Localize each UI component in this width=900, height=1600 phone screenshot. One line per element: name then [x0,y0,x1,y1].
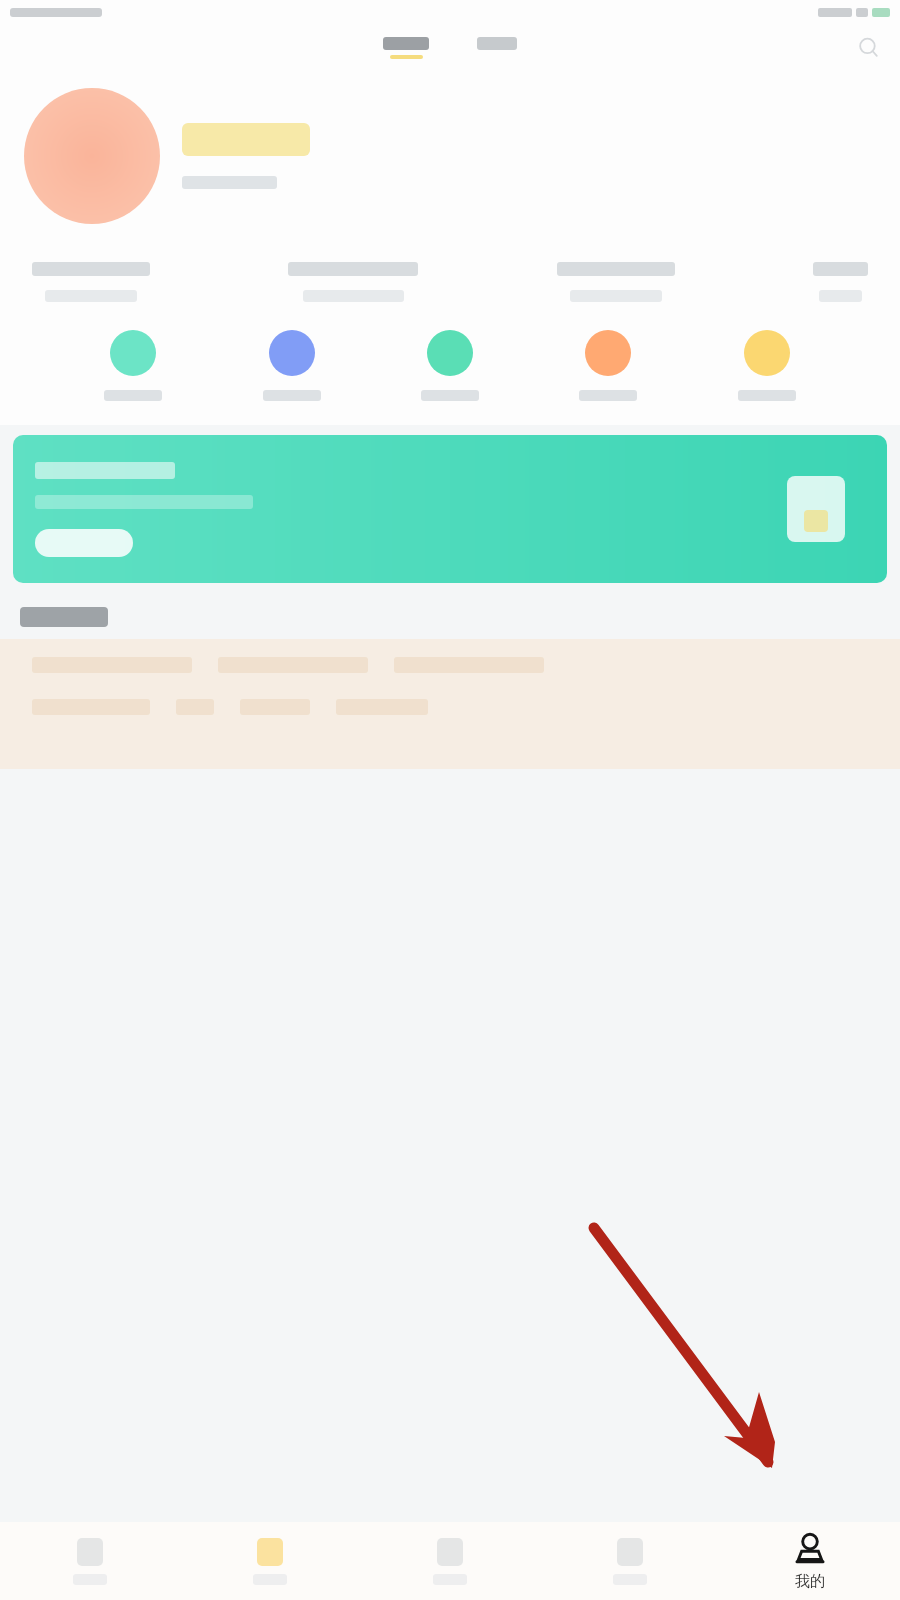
button[interactable] [813,262,868,302]
button[interactable] [557,262,675,302]
button[interactable]: Shortcut [98,328,168,403]
button[interactable]: Shortcut [415,328,485,403]
button[interactable]: Shortcut [573,328,643,403]
button[interactable] [35,529,133,557]
other: Mine [793,1532,827,1564]
button[interactable]: Mine [720,1522,900,1600]
button[interactable] [471,33,523,63]
button[interactable] [32,262,150,302]
button[interactable]: Tab [360,1522,540,1600]
button[interactable]: Tab [0,1522,180,1600]
button[interactable] [20,607,900,627]
button[interactable]: Search [856,35,882,61]
button[interactable] [288,262,418,302]
button[interactable] [24,88,880,224]
button[interactable] [0,639,900,769]
button[interactable] [13,435,887,583]
button[interactable]: Shortcut [257,328,327,403]
button[interactable]: Shortcut [732,328,802,403]
button[interactable]: Tab [540,1522,720,1600]
button[interactable]: Tab [180,1522,360,1600]
staticText: 我的 [795,1572,825,1591]
button[interactable] [377,33,435,63]
